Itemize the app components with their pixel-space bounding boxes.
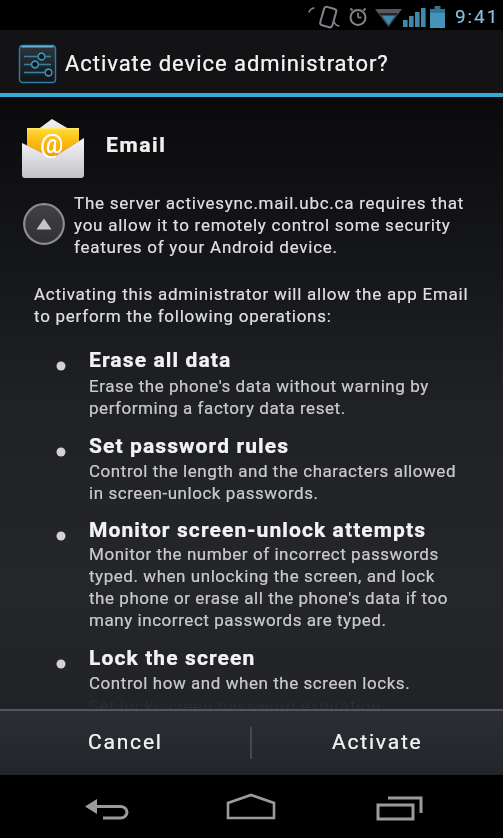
staticText: you allow it to remotely control some se… [74, 215, 451, 235]
button[interactable] [80, 791, 144, 825]
staticText: Activate [332, 730, 423, 755]
staticText: @ [40, 129, 64, 159]
staticText: Control how and when the screen locks. [89, 673, 411, 693]
staticText: Activating this administrator will allow… [34, 284, 469, 304]
button[interactable]: Activate [252, 711, 503, 775]
staticText: Monitor the number of incorrect password… [89, 544, 439, 564]
staticText: Cancel [88, 730, 163, 755]
staticText: many incorrect passwords are typed. [89, 610, 387, 630]
button[interactable] [220, 791, 284, 825]
staticText: Lock the screen [89, 646, 256, 671]
staticText: Set lock-screen password expiration [89, 696, 381, 716]
staticText: Set password rules [89, 434, 290, 459]
staticText: Email [106, 133, 167, 158]
staticText: Activate device administrator? [65, 51, 389, 77]
staticText: to perform the following operations: [34, 306, 332, 326]
staticText: typed. when unlocking the screen, and lo… [89, 566, 435, 586]
staticText: in screen-unlock passwords. [89, 483, 319, 503]
staticText: the phone or erase all the phone's data … [89, 588, 449, 608]
button[interactable] [23, 203, 65, 245]
staticText: Control the length and the characters al… [89, 461, 457, 481]
button[interactable]: Cancel [0, 711, 250, 775]
staticText: Erase the phone's data without warning b… [89, 376, 429, 396]
button[interactable] [370, 791, 434, 825]
staticText: performing a factory data reset. [89, 398, 346, 418]
staticText: The server activesync.mail.ubc.ca requir… [74, 193, 465, 213]
staticText: Erase all data [89, 348, 232, 373]
staticText: 9:41 [455, 5, 500, 27]
staticText: features of your Android device. [74, 237, 338, 257]
staticText: Monitor screen-unlock attempts [89, 518, 427, 543]
